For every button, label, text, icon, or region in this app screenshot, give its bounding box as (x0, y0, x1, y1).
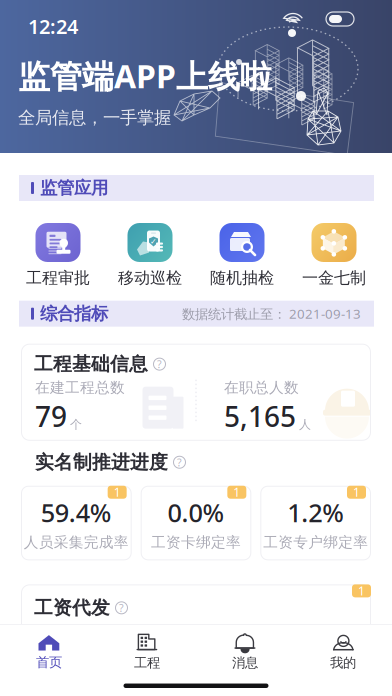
staticText: 全局信息，一手掌握 (18, 107, 171, 128)
staticText: ? (177, 455, 182, 469)
staticText: 随机抽检 (210, 268, 274, 288)
staticText: 监管端APP上线啦 (18, 55, 272, 97)
button[interactable]: 1.2% (260, 486, 371, 560)
button[interactable]: 59.4% (21, 486, 132, 560)
staticText: 在建工程总数 (35, 379, 125, 397)
staticText: 1 (233, 484, 240, 500)
staticText: 人 (299, 417, 311, 432)
staticText: 1.2% (287, 496, 344, 529)
staticText: 数据统计截止至： 2021-09-13 (182, 305, 361, 322)
staticText: 首页 (36, 654, 62, 670)
staticText: 79 (35, 398, 67, 435)
staticText: 1 (353, 484, 360, 500)
button[interactable]: 消息 (196, 625, 294, 677)
staticText: 工程基础信息 (34, 353, 148, 376)
staticText: 工程 (134, 655, 160, 671)
staticText: 工资卡绑定率 (151, 533, 241, 551)
staticText: 消息 (232, 655, 258, 671)
staticText: ✓ (150, 237, 157, 246)
staticText: 我的 (330, 655, 356, 671)
staticText: ? (119, 601, 124, 615)
staticText: 工资专户绑定率 (263, 533, 368, 551)
button[interactable]: 随机抽检 (210, 223, 274, 288)
staticText: 5,165 (224, 398, 296, 435)
button[interactable]: 工程 (98, 625, 196, 677)
staticText: 个 (70, 417, 82, 432)
button[interactable]: 0.0% (141, 486, 251, 560)
staticText: 59.4% (41, 496, 112, 529)
staticText: 工程审批 (26, 268, 90, 288)
staticText: 在职总人数 (224, 379, 299, 397)
staticText: 综合指标 (40, 303, 108, 324)
staticText: 0.0% (167, 496, 224, 529)
button[interactable]: ✓ (118, 223, 182, 288)
staticText: 1 (358, 583, 365, 599)
staticText: 人员采集完成率 (24, 533, 129, 551)
button[interactable]: 工程审批 (26, 223, 90, 288)
button[interactable]: 一金七制 (302, 223, 366, 288)
staticText: 1 (114, 484, 121, 500)
staticText: 移动巡检 (118, 268, 182, 288)
staticText: 12:24 (28, 13, 78, 40)
button[interactable]: 首页 (0, 625, 98, 676)
staticText: 0.0% (281, 630, 345, 667)
staticText: 监管应用 (40, 177, 108, 199)
staticText: 实名制推进进度 (35, 451, 168, 474)
staticText: ? (157, 357, 162, 371)
staticText: 工资代发 (34, 596, 110, 619)
staticText: 一金七制 (302, 268, 366, 288)
button[interactable]: 我的 (294, 625, 392, 677)
